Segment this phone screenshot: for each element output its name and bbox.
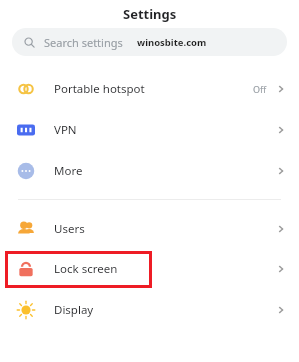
staticText: Search settings	[44, 35, 123, 50]
staticText: Lock screen	[54, 261, 118, 277]
button[interactable]: Lock screen	[0, 249, 299, 289]
other: Open Display	[275, 304, 287, 316]
staticText: Display	[54, 302, 94, 318]
button[interactable]: Portable hotspot	[0, 68, 299, 109]
other: Open More	[275, 165, 287, 177]
button[interactable]: More	[0, 150, 299, 191]
staticText: Users	[54, 221, 85, 237]
other: Open Lock screen	[275, 263, 287, 275]
other: Open VPN	[275, 124, 287, 136]
staticText: Off	[253, 83, 267, 95]
other: Open Users	[275, 223, 287, 235]
staticText: More	[54, 163, 83, 179]
staticText: Settings	[123, 5, 177, 23]
staticText: VPN	[54, 122, 77, 138]
staticText: Portable hotspot	[54, 81, 145, 97]
button[interactable]: VPN	[0, 109, 299, 150]
staticText: winosbite.com	[137, 36, 207, 49]
other: Open Portable hotspot	[275, 83, 287, 95]
button[interactable]: Display	[0, 289, 299, 330]
button[interactable]: Users	[0, 208, 299, 249]
button[interactable]: Search settings	[12, 28, 287, 56]
